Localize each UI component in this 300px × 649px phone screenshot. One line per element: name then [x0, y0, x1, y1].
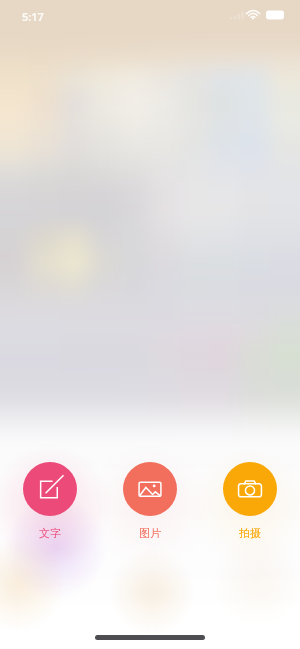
staticText: 5:17 — [22, 9, 44, 24]
staticText: 文字 — [39, 526, 61, 540]
button[interactable]: Text — [0, 462, 100, 552]
staticText: 图片 — [139, 526, 161, 540]
button[interactable]: Image — [100, 462, 200, 552]
button[interactable]: Camera — [200, 462, 300, 552]
staticText: 拍摄 — [239, 526, 261, 540]
